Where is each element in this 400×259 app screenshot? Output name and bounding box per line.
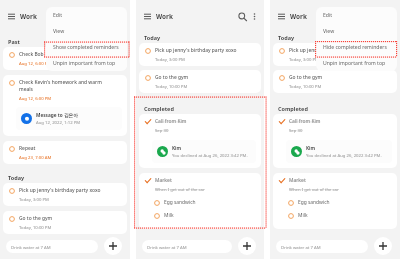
staticText: Milk xyxy=(164,212,174,219)
staticText: When I get out of the car xyxy=(289,186,339,192)
staticText: Go to the gym xyxy=(289,74,323,81)
button[interactable]: Go to the gym xyxy=(3,211,127,234)
staticText: Egg sandwich xyxy=(298,199,330,206)
staticText: Today, 3:00 PM xyxy=(19,196,49,202)
staticText: Pick up jenny's birthday party xoxo xyxy=(155,47,237,54)
staticText: Call from Kim xyxy=(289,118,321,125)
button[interactable]: Pick up jenny's birthday party xoxo xyxy=(3,183,127,206)
button[interactable]: Market xyxy=(273,173,397,229)
button[interactable]: Go to the gym xyxy=(139,70,261,93)
button[interactable]: Market xyxy=(139,173,261,229)
button[interactable]: Pick up jenny's birthday party xoxo xyxy=(273,43,397,66)
staticText: Check Bob xyxy=(19,51,44,58)
staticText: Repeat xyxy=(19,145,36,152)
button[interactable]: Hide completed reminders xyxy=(316,39,397,55)
button[interactable]: Show completed reminders xyxy=(46,39,127,55)
staticText: Today, 3:00 PM xyxy=(289,56,319,62)
staticText: View xyxy=(323,28,335,35)
staticText: Completed xyxy=(278,105,308,112)
staticText: Hide completed reminders xyxy=(323,44,387,51)
staticText: Today xyxy=(8,174,25,181)
staticText: Message to 김은아 xyxy=(36,112,78,118)
button[interactable]: Add reminder xyxy=(104,237,122,255)
staticText: Go to the gym xyxy=(155,74,189,81)
button[interactable]: More options xyxy=(248,10,260,22)
staticText: You declined at Aug 26, 2022 3:42 PM. xyxy=(172,152,248,158)
staticText: Market xyxy=(289,177,306,184)
staticText: Past xyxy=(8,38,20,45)
staticText: Pick up jenny's birthday party xoxo xyxy=(289,47,371,54)
button[interactable]: Repeat xyxy=(3,141,127,164)
button[interactable]: Call from Kim xyxy=(273,114,397,168)
staticText: Kim xyxy=(172,145,182,151)
button[interactable]: Drink water at 7 AM xyxy=(6,240,98,253)
staticText: Drink water at 7 AM xyxy=(11,244,51,250)
staticText: Check Kevin's homework and warm meals xyxy=(19,79,105,93)
button[interactable]: Navigation menu xyxy=(6,11,17,22)
staticText: Go to the gym xyxy=(19,215,53,222)
button[interactable]: Call from Kim xyxy=(139,114,261,168)
staticText: Egg sandwich xyxy=(164,199,196,206)
staticText: Kim xyxy=(306,145,316,151)
staticText: Aug 12, 6:00 PM xyxy=(19,60,52,66)
button[interactable]: Edit xyxy=(46,7,127,23)
staticText: Today xyxy=(278,34,295,41)
button[interactable]: Navigation menu xyxy=(276,11,287,22)
staticText: Sep 30 xyxy=(289,127,303,133)
staticText: View xyxy=(53,28,65,35)
button[interactable]: Check Bob xyxy=(3,47,127,70)
staticText: Today xyxy=(144,34,161,41)
button[interactable]: Search xyxy=(236,10,248,22)
button[interactable]: Drink water at 7 AM xyxy=(276,240,368,253)
button[interactable]: Add reminder xyxy=(374,237,392,255)
button[interactable]: Navigation menu xyxy=(142,11,153,22)
button[interactable]: Kim xyxy=(286,140,392,163)
button[interactable]: Unpin important from top xyxy=(46,55,127,71)
staticText: Today, 10:00 PM xyxy=(289,83,322,89)
staticText: Drink water at 7 AM xyxy=(281,244,321,250)
staticText: Unpin important from top xyxy=(53,60,116,67)
staticText: Aug 23, 7:00 AM xyxy=(19,154,52,160)
button[interactable]: Edit xyxy=(316,7,397,23)
staticText: Edit xyxy=(323,12,333,19)
staticText: Aug 12, 6:00 PM xyxy=(19,95,52,101)
staticText: Sep 30 xyxy=(155,127,169,133)
button[interactable]: Kim xyxy=(152,140,256,163)
staticText: Call from Kim xyxy=(155,118,187,125)
staticText: Work xyxy=(20,12,37,21)
staticText: Milk xyxy=(298,212,308,219)
staticText: Aug 12, 2022, 1:12 PM xyxy=(36,119,81,125)
button[interactable]: View xyxy=(316,23,397,39)
staticText: Work xyxy=(156,12,173,21)
button[interactable]: Unpin important from top xyxy=(316,55,397,71)
staticText: Market xyxy=(155,177,172,184)
button[interactable]: Message to 김은아 xyxy=(16,107,122,130)
button[interactable]: View xyxy=(46,23,127,39)
staticText: Show completed reminders xyxy=(53,44,119,51)
button[interactable]: Drink water at 7 AM xyxy=(142,240,232,253)
staticText: Drink water at 7 AM xyxy=(147,244,187,250)
button[interactable]: Check Kevin's homework and warm meals xyxy=(3,75,127,136)
staticText: Work xyxy=(290,12,307,21)
staticText: Unpin important from top xyxy=(323,60,386,67)
staticText: Today, 10:00 PM xyxy=(19,224,52,230)
staticText: Today, 3:00 PM xyxy=(155,56,185,62)
staticText: Edit xyxy=(53,12,63,19)
staticText: Today, 10:00 PM xyxy=(155,83,188,89)
staticText: Completed xyxy=(144,105,174,112)
staticText: When I get out of the car xyxy=(155,186,205,192)
button[interactable]: Go to the gym xyxy=(273,70,397,93)
button[interactable]: Add reminder xyxy=(238,237,256,255)
staticText: You declined at Aug 26, 2022 3:42 PM. xyxy=(306,152,382,158)
staticText: Pick up jenny's birthday party xoxo xyxy=(19,187,101,194)
button[interactable]: Pick up jenny's birthday party xoxo xyxy=(139,43,261,66)
